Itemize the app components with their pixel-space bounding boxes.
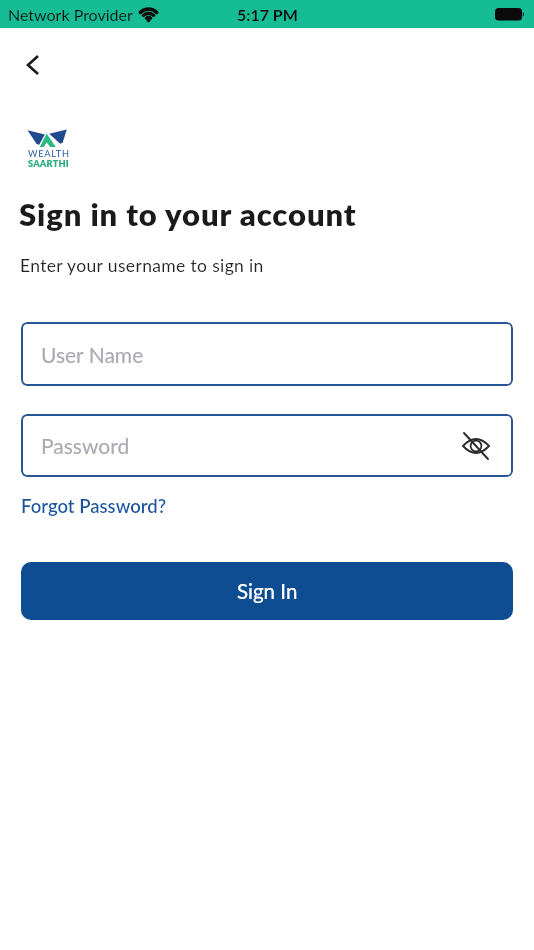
staticText: User Name xyxy=(41,342,144,367)
staticText: Enter your username to sign in xyxy=(20,255,264,276)
staticText: Password xyxy=(41,433,130,458)
staticText: Network Provider xyxy=(8,5,133,24)
button[interactable]: User Name xyxy=(21,322,513,386)
button[interactable]: Forgot Password? xyxy=(21,495,167,517)
staticText: 5:17 PM xyxy=(237,5,298,24)
staticText: Sign in to your account xyxy=(19,195,357,232)
button[interactable] xyxy=(12,46,52,84)
button[interactable]: Sign In xyxy=(21,562,513,620)
staticText: Sign In xyxy=(237,579,298,604)
staticText: SAARTHI xyxy=(28,158,69,169)
button[interactable] xyxy=(456,426,496,466)
button[interactable]: Password xyxy=(21,414,513,477)
staticText: WEALTH xyxy=(28,148,70,159)
staticText: Forgot Password? xyxy=(21,495,167,517)
